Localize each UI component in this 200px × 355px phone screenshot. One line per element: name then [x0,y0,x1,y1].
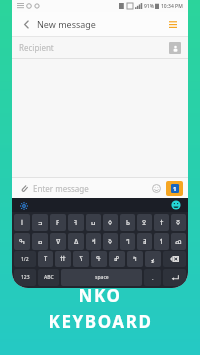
button[interactable]: ߐ [137,214,152,231]
button[interactable]: Attach [17,181,31,195]
staticText: ߤ [133,255,137,263]
staticText: ߜ [56,238,61,246]
staticText: ߝ [114,255,120,263]
button[interactable]: Emoji [149,181,164,196]
staticText: . [152,274,154,282]
button[interactable]: Add recipient from contacts [169,42,181,54]
staticText: ߥ [143,238,147,246]
button[interactable]: ߏ [32,214,48,231]
staticText: NKO [78,284,122,307]
button[interactable]: 123 [14,269,36,286]
button[interactable]: ߎ [86,214,101,231]
button[interactable]: ߦ [103,214,118,231]
staticText: ߖ [79,255,84,263]
button[interactable]: Keyboard settings [18,200,29,211]
button[interactable]: ߝ [109,251,125,267]
button[interactable]: ߟ [91,251,107,267]
staticText: ߘ [175,238,182,246]
staticText: ߔ [74,219,78,227]
button[interactable]: ߒ [14,233,30,250]
button[interactable]: Menu [164,15,182,33]
staticText: ߙ [160,219,164,227]
button[interactable]: ߊ [14,214,30,231]
staticText: KEYBOARD [48,310,153,333]
staticText: 1/2 [21,256,29,263]
staticText: 1 [173,185,177,193]
staticText: ߏ [38,219,43,227]
button[interactable]: 1/2 [14,251,36,267]
staticText: ߚ [60,255,66,263]
button[interactable]: Enter [163,269,186,286]
button[interactable]: ߤ [127,251,143,267]
staticText: ߧ [176,219,181,227]
staticText: ߊ [21,219,23,227]
staticText: ߠ [44,255,48,263]
staticText: ߗ [160,238,163,246]
staticText: ߒ [19,238,25,246]
staticText: 91% [144,3,154,10]
button[interactable]: Enter message [33,183,89,194]
staticText: ߎ [91,219,96,227]
staticText: ߟ [96,255,102,263]
button[interactable]: ߞ [86,233,101,250]
button[interactable]: ߘ [171,233,186,250]
button[interactable]: ߛ [32,233,48,250]
button[interactable]: ߙ [154,214,169,231]
staticText: ߕ [126,219,130,227]
button[interactable]: ߕ [120,214,135,231]
button[interactable]: ߗ [154,233,169,250]
button[interactable]: Send with SIM 1 [166,181,183,196]
button[interactable]: ߠ [38,251,53,267]
button[interactable]: ߜ [50,233,66,250]
staticText: ߣ [126,238,130,246]
staticText: ߐ [142,219,147,227]
button[interactable]: ߧ [171,214,186,231]
button[interactable]: Recipient [19,37,181,58]
staticText: Recipient [19,42,54,53]
staticText: New message [37,18,96,30]
button[interactable]: . [144,269,161,286]
staticText: ߓ [56,219,60,227]
button[interactable]: Backspace [163,251,186,267]
button[interactable]: ߨ [145,251,161,267]
staticText: ߦ [108,219,113,227]
staticText: ߛ [38,238,43,246]
button[interactable]: Emoji keyboard [170,199,182,211]
button[interactable]: ABC [38,269,59,286]
button[interactable]: ߖ [73,251,89,267]
staticText: ߨ [151,254,155,264]
staticText: ABC [44,274,54,281]
staticText: ߡ [74,238,79,246]
staticText: ߞ [92,238,96,246]
button[interactable]: ߚ [55,251,71,267]
button[interactable]: space [61,269,142,286]
staticText: space [95,274,109,281]
staticText: 123 [21,274,30,281]
button[interactable]: ߣ [120,233,135,250]
button[interactable]: ߢ [103,233,118,250]
button[interactable]: ߔ [68,214,84,231]
button[interactable]: Back [18,16,34,32]
staticText: 10:34 PM [161,3,183,10]
button[interactable]: ߓ [50,214,66,231]
button[interactable]: ߡ [68,233,84,250]
staticText: ߢ [108,238,113,246]
button[interactable]: ߥ [137,233,152,250]
